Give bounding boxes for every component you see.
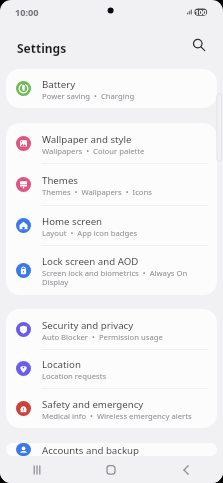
- button[interactable]: Home screen: [6, 205, 217, 245]
- button[interactable]: Themes: [6, 163, 217, 205]
- staticText: Wallpapers • Colour palette: [42, 146, 145, 156]
- staticText: 100: [195, 8, 207, 15]
- staticText: Settings: [17, 40, 67, 56]
- staticText: Medical info • Wireless emergency alerts: [42, 411, 192, 421]
- button[interactable]: Lock screen and AOD: [6, 245, 217, 295]
- staticText: Auto Blocker • Permission usage: [42, 332, 163, 342]
- staticText: Accounts and backup: [42, 444, 140, 456]
- button[interactable]: Wallpaper and style: [6, 123, 217, 163]
- button[interactable]: Home: [94, 456, 128, 483]
- staticText: Lock screen and AOD: [42, 255, 139, 268]
- button[interactable]: Accounts and backup: [6, 443, 217, 456]
- staticText: Layout • App icon badges: [42, 228, 138, 238]
- staticText: Battery: [42, 78, 76, 91]
- button[interactable]: Safety and emergency: [6, 388, 217, 428]
- button[interactable]: Search: [186, 32, 212, 58]
- staticText: 10:00: [15, 6, 39, 19]
- staticText: Themes • Wallpapers • Icons: [42, 187, 152, 197]
- staticText: Screen lock and biometrics • Always On D…: [42, 268, 207, 287]
- button[interactable]: Battery: [6, 69, 217, 108]
- button[interactable]: Recent apps: [20, 456, 54, 483]
- staticText: Location requests: [42, 371, 107, 381]
- staticText: Location: [42, 358, 81, 371]
- button[interactable]: Back: [169, 456, 203, 483]
- button[interactable]: Security and privacy: [6, 309, 217, 349]
- staticText: Safety and emergency: [42, 398, 144, 411]
- staticText: Wallpaper and style: [42, 133, 132, 146]
- staticText: Security and privacy: [42, 319, 134, 332]
- staticText: Home screen: [42, 215, 103, 228]
- staticText: Power saving • Charging: [42, 91, 135, 101]
- staticText: Themes: [42, 174, 78, 187]
- button[interactable]: Location: [6, 349, 217, 388]
